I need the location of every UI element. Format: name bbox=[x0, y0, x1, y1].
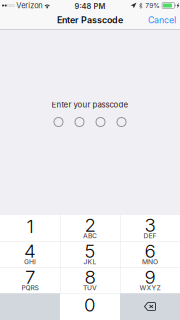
button[interactable]: 7 bbox=[0, 267, 60, 293]
button[interactable]: 1 bbox=[0, 215, 60, 241]
staticText: 0 bbox=[84, 293, 96, 316]
staticText: 3 bbox=[144, 214, 155, 236]
staticText: Verizon bbox=[16, 1, 42, 10]
staticText: MNO bbox=[142, 258, 158, 266]
staticText: 2 bbox=[84, 214, 95, 236]
button[interactable]: 0 bbox=[60, 293, 120, 320]
staticText: 7 bbox=[25, 266, 35, 288]
button[interactable]: 4 bbox=[0, 241, 60, 267]
button[interactable]: 3 bbox=[120, 215, 180, 241]
staticText: Enter Passcode bbox=[57, 15, 123, 25]
staticText: JKL bbox=[83, 258, 96, 266]
staticText: Enter your passcode bbox=[51, 100, 128, 109]
staticText: 8 bbox=[84, 266, 95, 288]
staticText: PQRS bbox=[21, 284, 38, 292]
staticText: DEF bbox=[143, 232, 156, 240]
staticText: 4 bbox=[24, 240, 36, 262]
staticText: 6 bbox=[144, 240, 155, 262]
staticText: 9:48 PM bbox=[74, 2, 105, 11]
staticText: 9 bbox=[144, 266, 155, 288]
staticText: 1 bbox=[26, 215, 33, 237]
button[interactable]: 5 bbox=[60, 241, 120, 267]
button[interactable]: 2 bbox=[60, 215, 120, 241]
button[interactable]: 9 bbox=[120, 267, 180, 293]
staticText: WXYZ bbox=[139, 284, 160, 292]
staticText: GHI bbox=[24, 258, 36, 266]
button[interactable]: 8 bbox=[60, 267, 120, 293]
button[interactable]: 6 bbox=[120, 241, 180, 267]
staticText: ABC bbox=[83, 232, 97, 240]
button[interactable]: Delete bbox=[120, 293, 180, 320]
staticText: 79% bbox=[145, 1, 160, 10]
staticText: 5 bbox=[84, 240, 95, 262]
staticText: Cancel bbox=[148, 15, 176, 25]
staticText: TUV bbox=[83, 284, 97, 292]
button[interactable]: Cancel bbox=[144, 11, 180, 29]
